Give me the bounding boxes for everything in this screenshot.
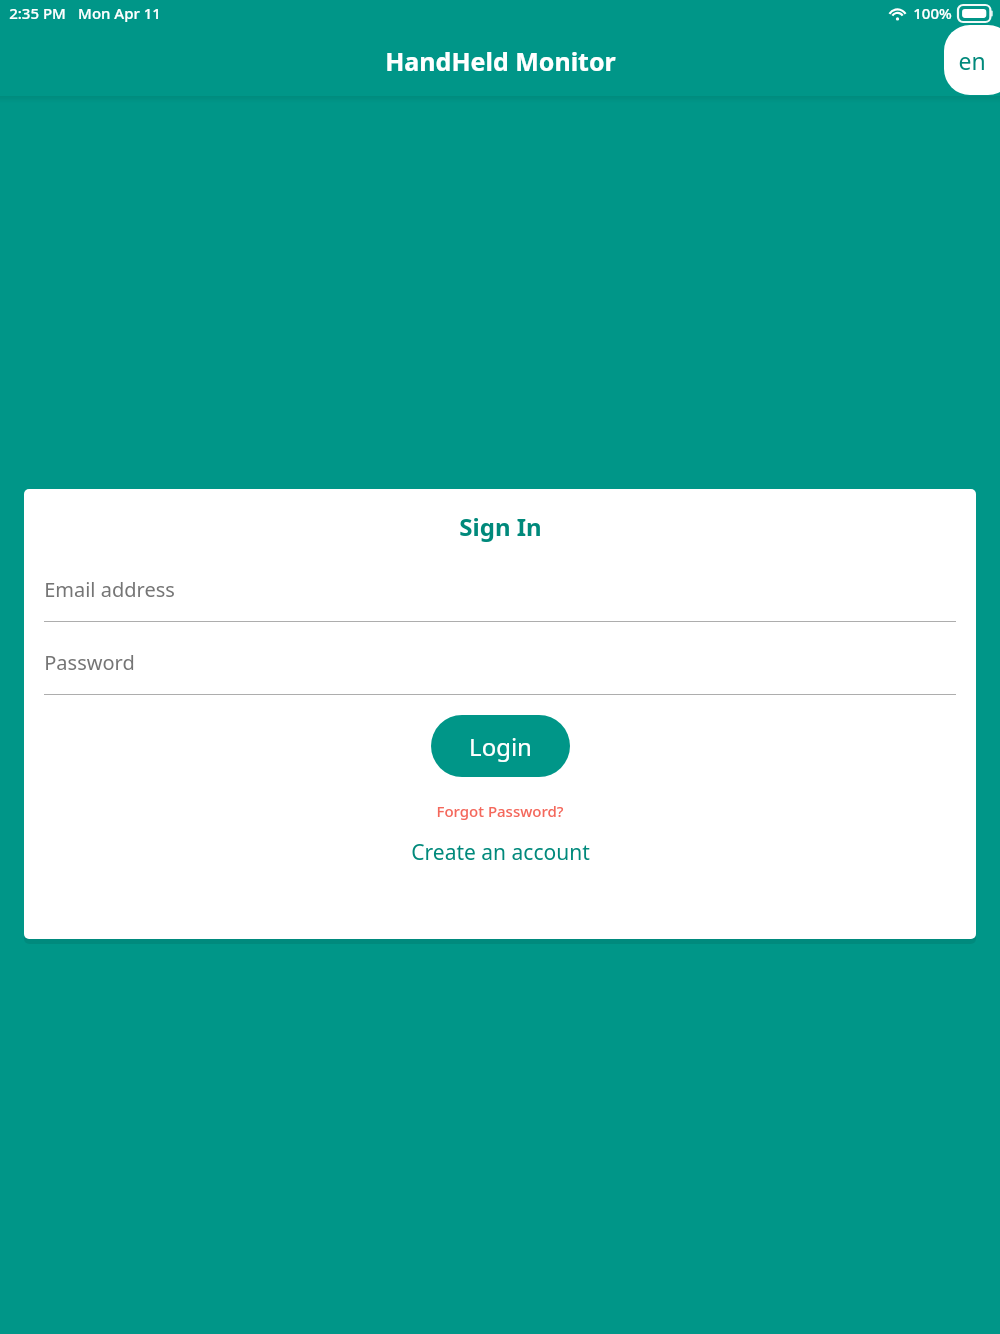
- staticText: Create an account: [411, 838, 590, 867]
- staticText: Login: [469, 730, 532, 763]
- staticText: Forgot Password?: [436, 801, 564, 821]
- staticText: HandHeld Monitor: [385, 44, 616, 78]
- button[interactable]: Login: [431, 715, 570, 777]
- staticText: Sign In: [459, 510, 542, 543]
- staticText: 100%: [913, 3, 952, 23]
- button[interactable]: Email address: [44, 569, 956, 622]
- staticText: Mon Apr 11: [78, 3, 161, 23]
- button[interactable]: Create an account: [24, 838, 976, 867]
- staticText: 2:35 PM: [9, 3, 66, 23]
- staticText: Password: [44, 649, 135, 676]
- button[interactable]: Change language: [944, 25, 1000, 95]
- button[interactable]: Password: [44, 642, 956, 695]
- staticText: Email address: [44, 576, 175, 603]
- button[interactable]: Forgot Password?: [24, 801, 976, 821]
- staticText: en: [958, 45, 986, 76]
